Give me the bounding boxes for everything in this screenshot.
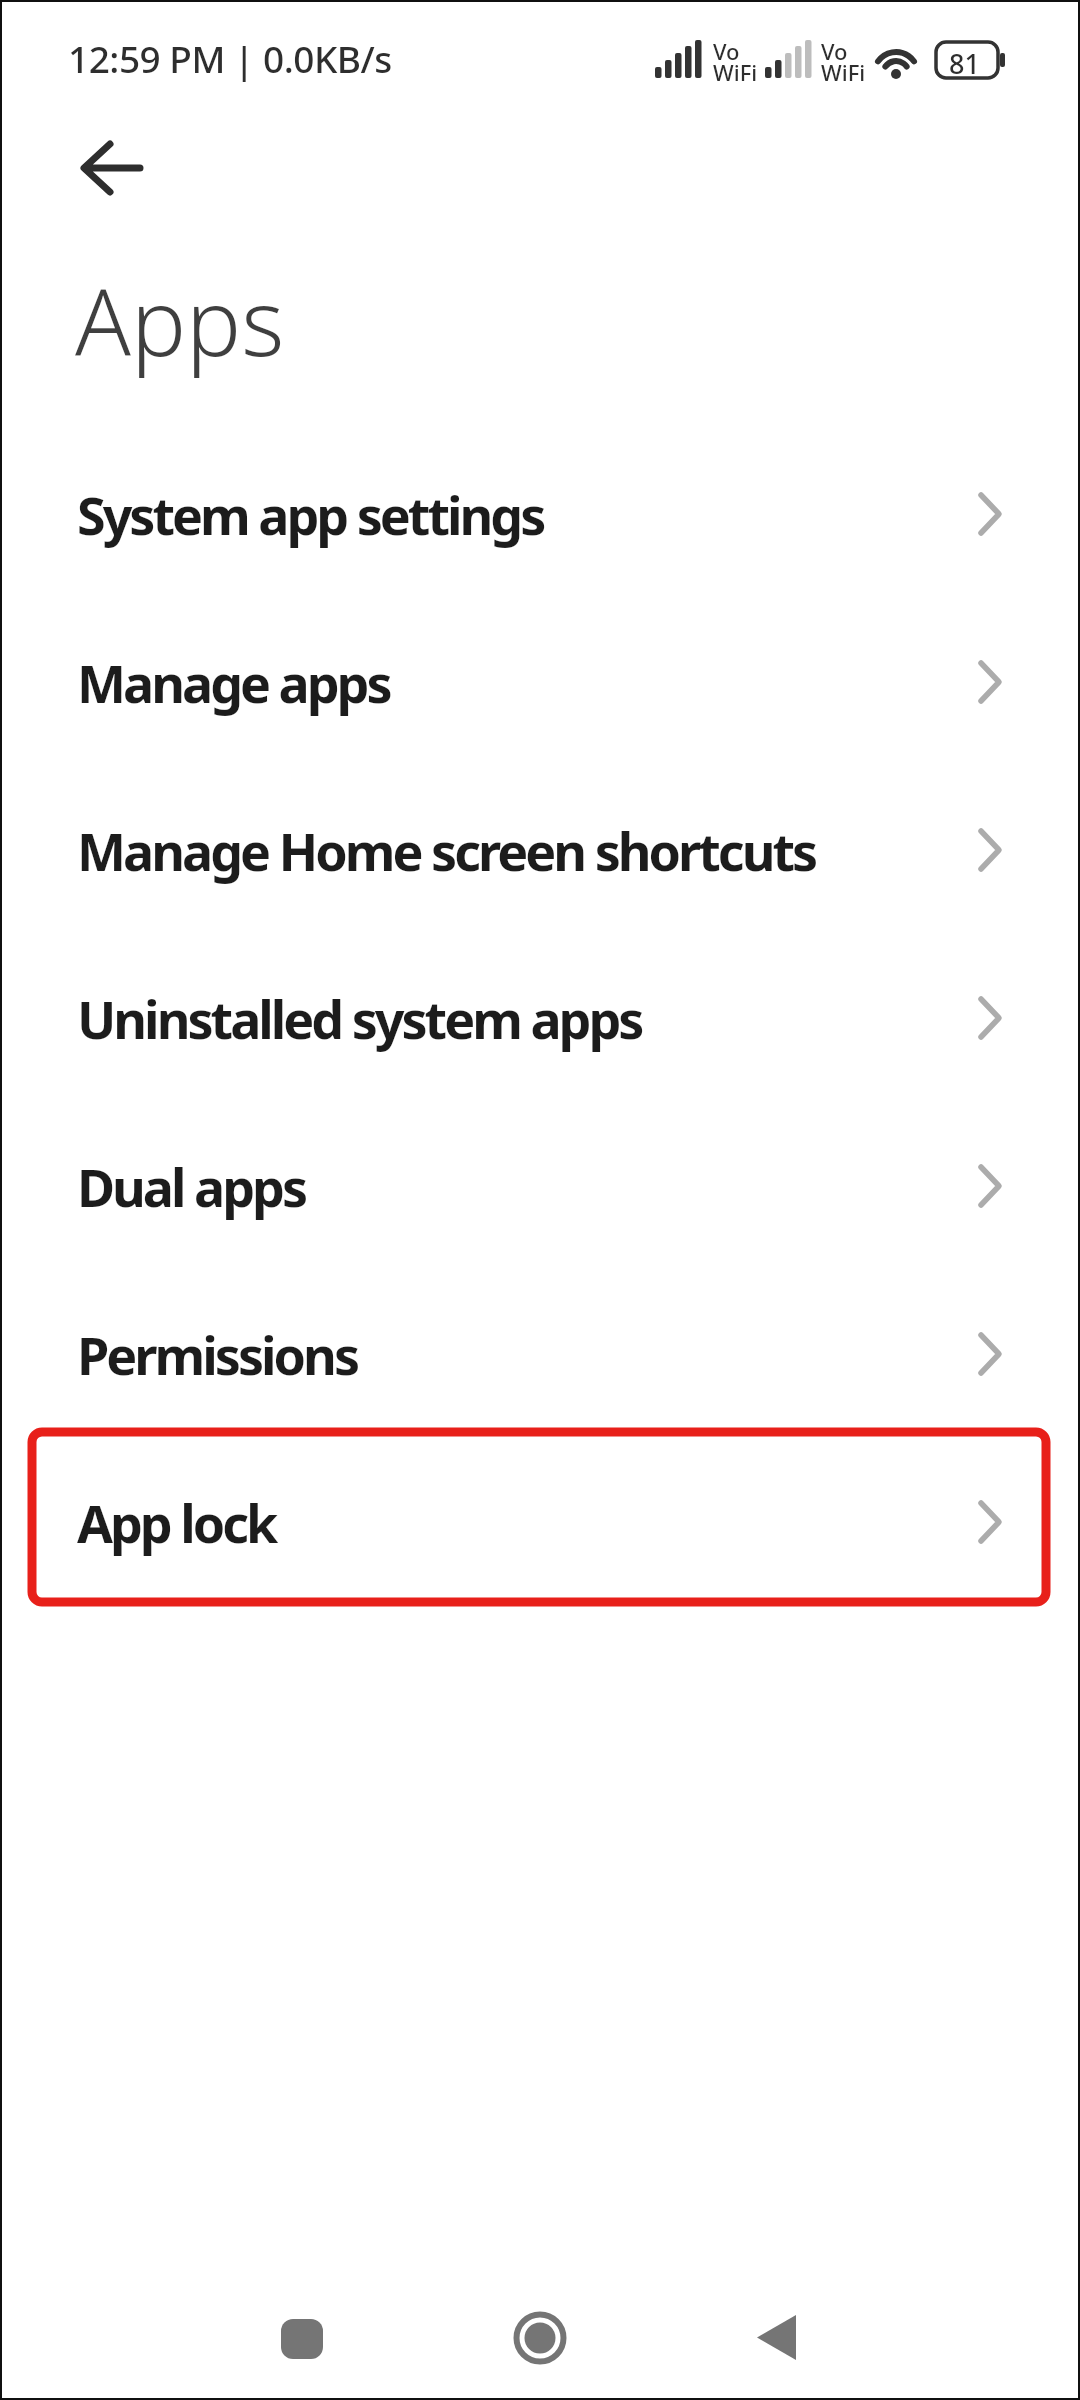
button[interactable]: Uninstalled system apps (0, 934, 1080, 1102)
button[interactable] (60, 122, 160, 214)
staticText: Manage Home screen shortcuts (77, 815, 816, 886)
button[interactable]: Manage Home screen shortcuts (0, 766, 1080, 934)
staticText: Vo WiFi (821, 36, 866, 88)
staticText: Uninstalled system apps (77, 983, 642, 1054)
button[interactable]: Permissions (0, 1270, 1080, 1438)
button[interactable]: App lock (0, 1438, 1080, 1606)
button[interactable] (183, 2290, 421, 2385)
staticText: App lock (77, 1487, 276, 1558)
button[interactable] (659, 2290, 897, 2385)
button[interactable]: Manage apps (0, 598, 1080, 766)
button[interactable]: Dual apps (0, 1102, 1080, 1270)
staticText: Permissions (77, 1319, 357, 1390)
button[interactable] (421, 2290, 659, 2385)
staticText: System app settings (77, 479, 544, 550)
staticText: Dual apps (77, 1151, 306, 1222)
staticText: Apps (75, 258, 285, 383)
staticText: Vo WiFi (713, 36, 758, 88)
button[interactable]: System app settings (0, 430, 1080, 598)
staticText: 81 (949, 45, 980, 82)
staticText: 12:59 PM | 0.0KB/s (68, 33, 392, 83)
staticText: Manage apps (77, 647, 390, 718)
